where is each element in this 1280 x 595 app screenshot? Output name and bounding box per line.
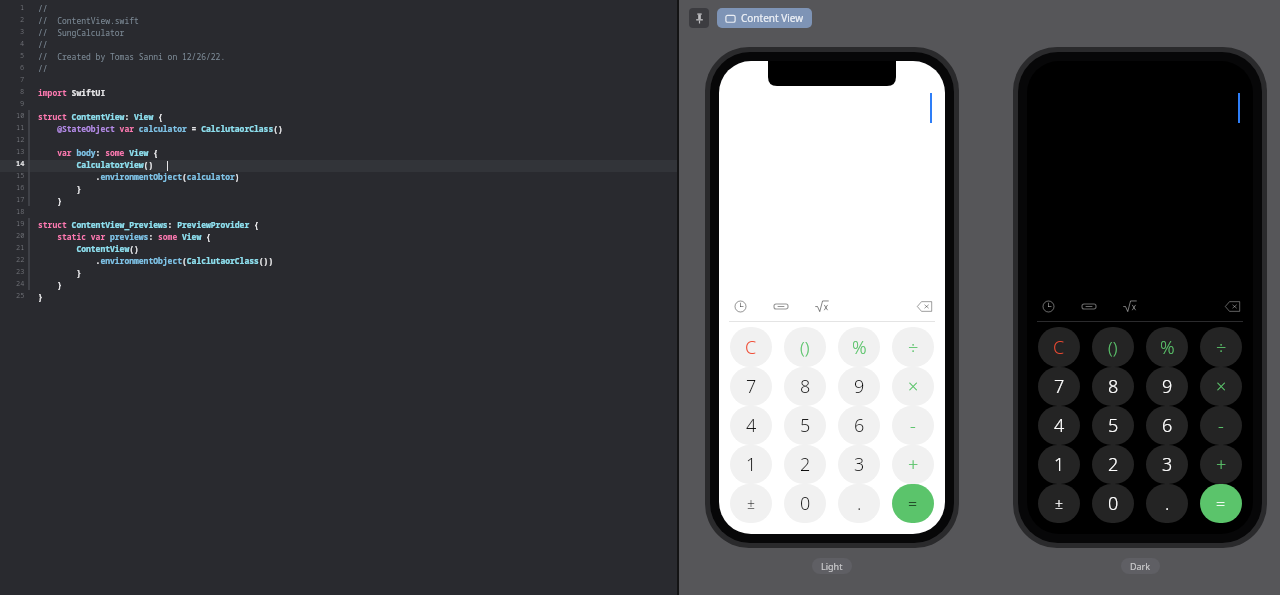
button[interactable]: C	[730, 327, 772, 367]
button[interactable]: .	[1146, 484, 1188, 523]
staticText: 6	[20, 63, 25, 73]
staticText: 3	[1162, 452, 1173, 477]
staticText: 23	[16, 267, 25, 277]
staticText: 2	[20, 15, 25, 25]
button[interactable]: 7	[1038, 367, 1080, 406]
staticText: //	[38, 39, 48, 50]
staticText: ×	[908, 374, 919, 399]
staticText: 9	[854, 374, 865, 399]
staticText: 5	[800, 413, 811, 438]
staticText: struct ContentView: View {	[38, 111, 163, 122]
button[interactable]: 9	[838, 367, 880, 406]
staticText: @StateObject var calculator = Calclutaor…	[38, 123, 283, 134]
button[interactable]: 6	[838, 406, 880, 445]
button[interactable]: %	[838, 327, 880, 367]
staticText: ()	[800, 336, 810, 359]
staticText: var body: some View {	[38, 147, 158, 158]
staticText: ÷	[908, 335, 919, 360]
staticText: //	[38, 3, 48, 14]
button[interactable]: +	[892, 445, 934, 484]
button[interactable]: Pin preview	[689, 8, 709, 28]
button[interactable]: =	[892, 484, 934, 523]
button[interactable]: 4	[730, 406, 772, 445]
staticText: 24	[16, 279, 25, 289]
staticText: Light	[821, 560, 843, 572]
button[interactable]: 8	[784, 367, 826, 406]
staticText: .	[857, 491, 862, 516]
button[interactable]: Backspace	[1222, 296, 1242, 316]
button[interactable]: ×	[892, 367, 934, 406]
staticText: 4	[20, 39, 25, 49]
button[interactable]: 2	[1092, 445, 1134, 484]
button[interactable]: -	[892, 406, 934, 445]
button[interactable]: 3	[838, 445, 880, 484]
staticText: -	[910, 413, 916, 438]
staticText: 7	[1054, 374, 1065, 399]
button[interactable]: 1	[1038, 445, 1080, 484]
button[interactable]: +	[1200, 445, 1242, 484]
button[interactable]: History	[730, 296, 750, 316]
button[interactable]: ÷	[1200, 327, 1242, 367]
button[interactable]: Backspace	[914, 296, 934, 316]
staticText: 4	[746, 413, 757, 438]
button[interactable]: 8	[1092, 367, 1134, 406]
staticText: +	[908, 452, 919, 477]
button[interactable]: 2	[784, 445, 826, 484]
staticText: .environmentObject(CalclutaorClass())	[38, 255, 274, 266]
button[interactable]: %	[1146, 327, 1188, 367]
staticText: 20	[16, 231, 25, 241]
button[interactable]: Square root	[1120, 296, 1140, 316]
staticText: 6	[1162, 413, 1173, 438]
button[interactable]: Keyboard	[771, 296, 791, 316]
staticText: 14	[16, 159, 25, 169]
staticText: +	[1216, 452, 1227, 477]
button[interactable]: =	[1200, 484, 1242, 523]
button[interactable]: Content View	[717, 8, 812, 28]
staticText: ÷	[1216, 335, 1227, 360]
button[interactable]: 0	[1092, 484, 1134, 523]
button[interactable]: 5	[784, 406, 826, 445]
button[interactable]: 7	[730, 367, 772, 406]
staticText: =	[908, 493, 918, 515]
button[interactable]: 3	[1146, 445, 1188, 484]
staticText: }	[38, 183, 82, 194]
button[interactable]: 9	[1146, 367, 1188, 406]
staticText: 0	[1108, 491, 1119, 516]
button[interactable]: 1	[730, 445, 772, 484]
staticText: 4	[1054, 413, 1065, 438]
button[interactable]: ±	[730, 484, 772, 523]
staticText: 5	[20, 51, 25, 61]
button[interactable]: C	[1038, 327, 1080, 367]
button[interactable]: ()	[784, 327, 826, 367]
button[interactable]: 5	[1092, 406, 1134, 445]
button[interactable]: ()	[1092, 327, 1134, 367]
button[interactable]: ±	[1038, 484, 1080, 523]
button[interactable]: ÷	[892, 327, 934, 367]
staticText: 9	[20, 99, 25, 109]
button[interactable]: 6	[1146, 406, 1188, 445]
button[interactable]: Keyboard	[1079, 296, 1099, 316]
staticText: ±	[747, 494, 755, 513]
staticText: C	[745, 335, 757, 360]
staticText: 19	[16, 219, 25, 229]
staticText: 8	[20, 87, 25, 97]
button[interactable]: ×	[1200, 367, 1242, 406]
button[interactable]: -	[1200, 406, 1242, 445]
staticText: //	[38, 63, 48, 74]
button[interactable]: Square root	[812, 296, 832, 316]
staticText: 9	[1162, 374, 1173, 399]
button[interactable]: 0	[784, 484, 826, 523]
staticText: // Created by Tomas Sanni on 12/26/22.	[38, 51, 226, 62]
staticText: static var previews: some View {	[38, 231, 211, 242]
staticText: %	[1160, 335, 1175, 360]
staticText: 15	[16, 171, 25, 181]
button[interactable]: .	[838, 484, 880, 523]
button[interactable]: History	[1038, 296, 1058, 316]
staticText: 11	[16, 123, 25, 133]
staticText: 3	[854, 452, 865, 477]
staticText: .	[1165, 491, 1170, 516]
staticText: ContentView()	[38, 243, 139, 254]
staticText: }	[38, 195, 62, 206]
button[interactable]: 4	[1038, 406, 1080, 445]
staticText: 1	[746, 452, 757, 477]
